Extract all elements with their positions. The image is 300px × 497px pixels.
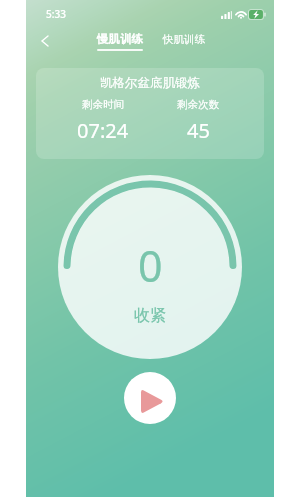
- staticText: 快肌训练: [163, 33, 205, 46]
- button[interactable]: 快肌训练: [160, 26, 208, 56]
- staticText: 45: [187, 117, 210, 144]
- staticText: 5:33: [46, 7, 66, 21]
- staticText: 0: [138, 236, 163, 295]
- button[interactable]: Start: [124, 372, 176, 424]
- staticText: 07:24: [77, 117, 129, 144]
- staticText: 剩余时间: [82, 98, 124, 111]
- staticText: 收紧: [134, 306, 166, 326]
- staticText: 凯格尔盆底肌锻炼: [100, 75, 200, 91]
- button[interactable]: Back: [31, 27, 59, 55]
- button[interactable]: 慢肌训练: [96, 26, 144, 56]
- staticText: 慢肌训练: [97, 32, 143, 46]
- staticText: 剩余次数: [177, 98, 219, 111]
